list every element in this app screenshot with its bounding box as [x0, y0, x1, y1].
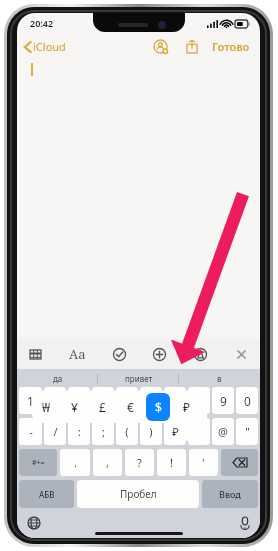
- staticText: ,: [106, 455, 109, 470]
- staticText: ₽: [183, 399, 190, 415]
- staticText: Пробел: [120, 487, 157, 501]
- button[interactable]: 3: [68, 387, 90, 414]
- staticText: ?: [137, 455, 142, 470]
- button[interactable]: $: [146, 393, 170, 421]
- button[interactable]: ₽: [164, 418, 186, 445]
- button[interactable]: #+=: [19, 449, 57, 476]
- button[interactable]: 6: [140, 387, 162, 414]
- button[interactable]: !: [157, 449, 186, 476]
- button[interactable]: Ввод: [202, 480, 258, 508]
- button[interactable]: Готово: [208, 36, 254, 57]
- staticText: /: [53, 424, 58, 439]
- button[interactable]: Backspace: [221, 449, 258, 476]
- staticText: 4: [100, 393, 107, 409]
- button[interactable]: 8: [188, 387, 210, 414]
- button[interactable]: ': [189, 449, 218, 476]
- button[interactable]: Share: [182, 35, 202, 58]
- button[interactable]: 7: [164, 387, 186, 414]
- staticText: #+=: [32, 458, 45, 468]
- button[interactable]: Add attachment: [149, 344, 170, 365]
- button[interactable]: Checklist: [109, 344, 130, 365]
- staticText: 9: [220, 393, 227, 409]
- staticText: 1: [27, 393, 34, 409]
- button[interactable]: АБВ: [19, 480, 74, 508]
- button[interactable]: Table: [25, 344, 46, 365]
- button[interactable]: Add people: [149, 35, 172, 58]
- button[interactable]: 1: [19, 387, 42, 414]
- button[interactable]: £: [90, 393, 114, 421]
- button[interactable]: @: [212, 418, 234, 445]
- staticText: @: [218, 424, 228, 439]
- staticText: ;: [102, 424, 105, 439]
- staticText: 3: [76, 393, 83, 409]
- staticText: 20:42: [30, 17, 54, 29]
- button[interactable]: €: [118, 393, 142, 421]
- staticText: -: [29, 424, 33, 439]
- button[interactable]: Dictation: [237, 513, 253, 534]
- button[interactable]: 5: [116, 387, 138, 414]
- staticText: Aa: [69, 345, 86, 363]
- staticText: 0: [244, 393, 251, 409]
- button[interactable]: 2: [44, 387, 66, 414]
- staticText: ': [202, 455, 205, 470]
- staticText: 6: [148, 393, 155, 409]
- staticText: да: [53, 373, 63, 384]
- button[interactable]: 4: [92, 387, 114, 414]
- button[interactable]: -: [19, 418, 42, 445]
- button[interactable]: ": [236, 418, 258, 445]
- button[interactable]: Change keyboard: [24, 513, 44, 533]
- button[interactable]: 0: [236, 387, 258, 414]
- staticText: £: [99, 399, 106, 415]
- button[interactable]: 9: [212, 387, 234, 414]
- staticText: привет: [125, 373, 153, 384]
- button[interactable]: .: [60, 449, 90, 476]
- button[interactable]: Пробел: [77, 480, 199, 508]
- staticText: !: [170, 455, 173, 470]
- button[interactable]: ;: [92, 418, 114, 445]
- button[interactable]: iCloud: [17, 36, 72, 57]
- staticText: ): [149, 424, 153, 439]
- staticText: 5: [124, 393, 131, 409]
- button[interactable]: ¥: [62, 393, 86, 421]
- staticText: :: [78, 424, 81, 439]
- button[interactable]: ,: [93, 449, 122, 476]
- button[interactable]: ₩: [34, 393, 58, 421]
- button[interactable]: Aa: [66, 342, 89, 366]
- staticText: ₩: [42, 399, 51, 415]
- staticText: (: [125, 424, 129, 439]
- staticText: в: [217, 373, 222, 384]
- staticText: ₽: [172, 424, 179, 439]
- staticText: Ввод: [219, 488, 241, 500]
- button[interactable]: да: [17, 369, 98, 387]
- button[interactable]: ): [140, 418, 162, 445]
- staticText: АБВ: [39, 489, 55, 500]
- button[interactable]: ₽: [174, 393, 198, 421]
- button[interactable]: :: [68, 418, 90, 445]
- staticText: Готово: [212, 39, 250, 54]
- staticText: .: [74, 455, 77, 470]
- button[interactable]: ?: [125, 449, 154, 476]
- button[interactable]: привет: [98, 369, 179, 387]
- button[interactable]: /: [44, 418, 66, 445]
- button[interactable]: Markup: [190, 344, 211, 365]
- staticText: iCloud: [33, 39, 66, 54]
- staticText: €: [127, 399, 134, 415]
- button[interactable]: &: [188, 418, 210, 445]
- staticText: ¥: [71, 399, 78, 415]
- button[interactable]: Close keyboard: [231, 344, 252, 365]
- button[interactable]: в: [179, 369, 260, 387]
- staticText: $: [155, 399, 162, 415]
- button[interactable]: (: [116, 418, 138, 445]
- staticText: ": [245, 424, 250, 439]
